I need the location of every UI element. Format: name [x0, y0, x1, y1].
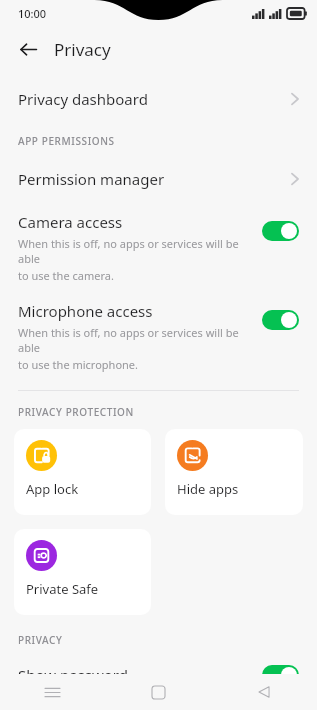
- button[interactable]: Camera access: [0, 212, 317, 283]
- staticText: When this is off, no apps or services wi…: [18, 325, 252, 355]
- staticText: to use the microphone.: [18, 357, 138, 372]
- staticText: Private Safe: [26, 580, 99, 598]
- button[interactable]: Home: [105, 674, 211, 710]
- button[interactable]: Toggle: [262, 221, 299, 241]
- button[interactable]: Microphone access: [0, 301, 317, 372]
- staticText: Hide apps: [177, 480, 239, 498]
- button[interactable]: App lock: [14, 429, 151, 515]
- button[interactable]: Recent apps: [0, 674, 105, 710]
- button[interactable]: Hide apps: [165, 429, 303, 515]
- staticText: Privacy dashboard: [18, 89, 291, 109]
- button[interactable]: Show password: [0, 655, 317, 695]
- button[interactable]: Back: [211, 674, 317, 710]
- button[interactable]: Permission manager: [0, 158, 317, 200]
- staticText: Show password: [18, 665, 262, 685]
- staticText: APP PERMISSIONS: [18, 134, 317, 148]
- staticText: 10:00: [18, 6, 47, 21]
- staticText: to use the camera.: [18, 268, 114, 283]
- staticText: Camera access: [18, 212, 123, 232]
- staticText: Privacy: [54, 38, 111, 61]
- staticText: PRIVACY: [18, 633, 317, 647]
- button[interactable]: Privacy dashboard: [0, 78, 317, 120]
- button[interactable]: Toggle: [262, 310, 299, 330]
- staticText: PRIVACY PROTECTION: [18, 405, 317, 419]
- button[interactable]: Toggle: [262, 665, 299, 685]
- staticText: App lock: [26, 480, 79, 498]
- staticText: Microphone access: [18, 301, 153, 321]
- button[interactable]: Back: [10, 31, 46, 67]
- staticText: When this is off, no apps or services wi…: [18, 236, 252, 266]
- staticText: Permission manager: [18, 169, 291, 189]
- button[interactable]: Private Safe: [14, 529, 151, 615]
